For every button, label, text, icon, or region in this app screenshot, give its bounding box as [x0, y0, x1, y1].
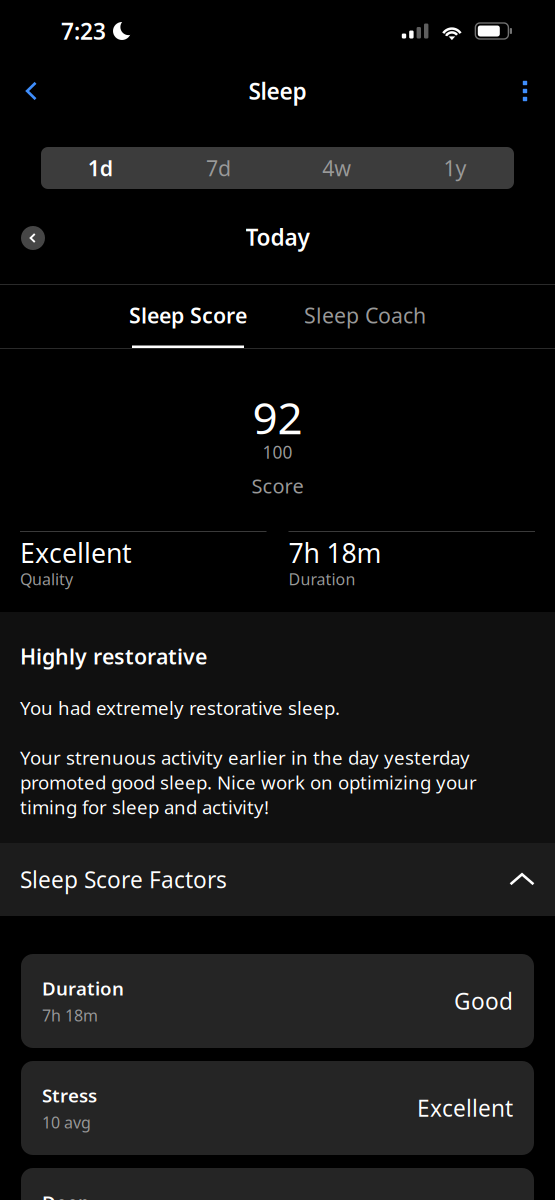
- button[interactable]: Sleep Score Factors: [0, 843, 555, 916]
- staticText: Highly restorative: [20, 642, 207, 670]
- staticText: Sleep Score Factors: [20, 864, 227, 894]
- staticText: Stress: [42, 1083, 97, 1108]
- staticText: Sleep: [248, 76, 306, 106]
- staticText: Deep: [42, 1190, 90, 1200]
- button[interactable]: 1y: [396, 147, 514, 189]
- staticText: Sleep Score: [129, 301, 247, 329]
- button[interactable]: Deep: [21, 1168, 534, 1200]
- staticText: Duration: [288, 568, 355, 590]
- button[interactable]: Stress: [21, 1061, 534, 1155]
- staticText: Today: [245, 222, 309, 252]
- staticText: 92: [252, 388, 302, 446]
- button[interactable]: 7d: [159, 147, 277, 189]
- staticText: 7h 18m: [42, 1005, 98, 1026]
- staticText: Good: [454, 986, 513, 1016]
- staticText: 4w: [322, 154, 351, 182]
- staticText: 1d: [88, 154, 113, 182]
- staticText: 7:23: [61, 16, 106, 46]
- staticText: 7d: [206, 154, 231, 182]
- button[interactable]: Back: [8, 67, 56, 115]
- staticText: 1y: [443, 154, 466, 182]
- staticText: 10 avg: [42, 1112, 91, 1133]
- button[interactable]: Sleep Score: [129, 285, 247, 348]
- staticText: 7h 18m: [288, 535, 381, 570]
- staticText: 100: [262, 440, 292, 463]
- staticText: You had extremely restorative sleep.: [20, 695, 340, 720]
- staticText: Duration: [42, 976, 124, 1001]
- button[interactable]: 1d: [41, 147, 159, 189]
- button[interactable]: Previous day: [13, 218, 53, 258]
- button[interactable]: More options: [503, 67, 547, 115]
- staticText: Sleep Coach: [304, 301, 426, 329]
- staticText: Excellent: [20, 535, 132, 570]
- staticText: Quality: [20, 568, 73, 590]
- staticText: Score: [251, 472, 303, 499]
- staticText: Excellent: [417, 1093, 513, 1123]
- button[interactable]: Duration: [21, 954, 534, 1048]
- staticText: Your strenuous activity earlier in the d…: [20, 745, 477, 819]
- button[interactable]: Sleep Coach: [304, 285, 426, 348]
- button[interactable]: 4w: [277, 147, 396, 189]
